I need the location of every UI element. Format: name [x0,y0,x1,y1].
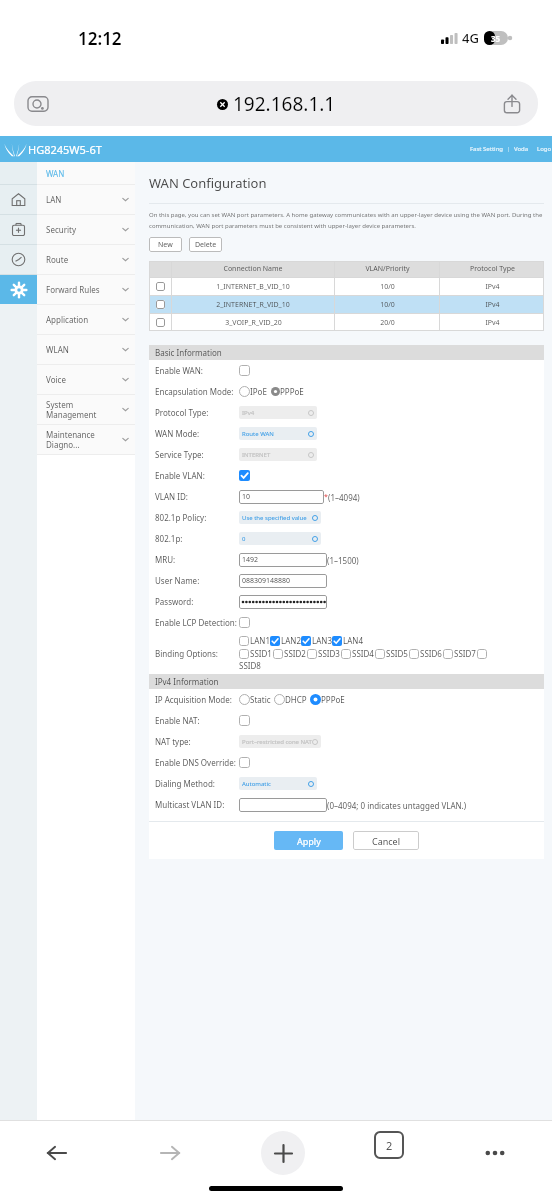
staticText: 10 [242,492,251,502]
staticText: Enable DNS Override: [155,757,239,768]
button[interactable]: LAN1 [239,635,270,646]
button[interactable]: IPv4 [239,406,317,419]
button[interactable]: Voice [37,365,135,394]
button[interactable] [307,649,317,659]
button[interactable] [239,798,327,812]
staticText: Forward Rules [46,284,121,295]
button[interactable] [239,617,250,628]
button[interactable]: Route WAN [239,427,317,440]
staticText: System Management [46,399,121,420]
button[interactable] [301,636,311,646]
staticText: SSID7 [454,648,476,659]
staticText: VLAN/Priority [365,264,410,274]
staticText: Binding Options: [155,648,239,659]
staticText: IPv4 [485,318,500,328]
button[interactable]: Forward Rules [37,275,135,304]
button[interactable] [239,386,250,397]
staticText: SSID2 [284,648,306,659]
button[interactable] [239,636,249,646]
staticText: 802.1p: [155,533,239,544]
button[interactable]: SSID3 [307,648,340,659]
button[interactable] [239,365,250,376]
button[interactable]: Share [502,94,522,114]
staticText: HG8245W5-6T [28,142,102,157]
button[interactable]: System Management [37,395,135,424]
button[interactable]: New [149,237,182,252]
staticText: WAN Mode: [155,428,239,439]
staticText: IPoE [250,386,267,397]
button[interactable]: More [473,1131,517,1175]
button[interactable]: 10 [239,490,324,504]
button[interactable]: SSID4 [341,648,374,659]
button[interactable] [310,694,321,705]
button[interactable]: LAN2 [270,635,301,646]
button[interactable] [239,470,250,481]
button[interactable]: Maintenance Diagno... [37,425,135,454]
staticText: LAN1 [250,635,270,646]
button[interactable]: New tab [261,1131,305,1175]
button[interactable]: INTERNET [239,448,317,461]
button[interactable]: Logo [537,145,552,153]
button[interactable] [270,636,280,646]
button[interactable]: 088309148880 [239,574,327,588]
button[interactable]: 2_INTERNET_R_VID_10 [149,296,544,313]
button[interactable] [274,694,285,705]
staticText: Enable VLAN: [155,470,239,481]
button[interactable] [273,649,283,659]
button[interactable]: Cancel [353,831,419,850]
button[interactable]: Forward Rules [0,275,37,304]
button[interactable] [332,636,342,646]
button[interactable] [341,649,351,659]
button[interactable]: Forward [148,1131,192,1175]
button[interactable] [239,694,250,705]
button[interactable]: Voda [514,145,529,153]
button[interactable]: LAN [37,185,135,214]
button[interactable]: 1492 [239,553,327,567]
button[interactable]: Menu section [0,185,37,214]
staticText: 3_VOIP_R_VID_20 [225,318,282,328]
button[interactable] [409,649,419,659]
staticText: 20/0 [380,318,395,328]
button[interactable] [443,649,453,659]
button[interactable]: Delete [189,237,222,252]
button[interactable]: LAN3 [301,635,332,646]
button[interactable]: 0 [239,532,321,545]
button[interactable] [239,757,250,768]
button[interactable]: WLAN [37,335,135,364]
button[interactable]: Use the specified value [239,511,321,524]
button[interactable]: SSID1 [239,648,272,659]
button[interactable]: Security [37,215,135,244]
button[interactable]: 1_INTERNET_B_VID_10 [149,278,544,295]
button[interactable]: 3_VOIP_R_VID_20 [149,314,544,331]
staticText: 1492 [242,555,259,565]
button[interactable]: Port–restricted cone NAT [239,735,321,748]
button[interactable]: SSID6 [409,648,442,659]
button[interactable]: Scan [28,94,48,114]
staticText: Cancel [372,835,401,847]
button[interactable]: Application [37,305,135,334]
button[interactable]: Menu section [0,245,37,274]
button[interactable]: WAN [46,162,135,184]
button[interactable]: Automatic [239,777,317,790]
button[interactable]: Scan [14,81,538,126]
button[interactable]: SSID7 [443,648,476,659]
button[interactable] [477,649,487,659]
button[interactable] [239,715,250,726]
button[interactable] [239,595,327,609]
button[interactable]: SSID2 [273,648,306,659]
button[interactable]: LAN4 [332,635,363,646]
staticText: Password: [155,596,239,607]
button[interactable]: Apply [274,831,343,850]
button[interactable]: Tabs [374,1131,404,1159]
staticText: Protocol Type: [155,407,239,418]
button[interactable]: Menu section [0,215,37,244]
staticText: SSID6 [420,648,442,659]
button[interactable]: Fast Setting [470,145,504,153]
button[interactable]: Route [37,245,135,274]
button[interactable]: SSID5 [375,648,408,659]
staticText: Use the specified value [242,514,307,522]
button[interactable] [239,649,249,659]
button[interactable] [271,387,280,396]
button[interactable]: Back [35,1131,79,1175]
button[interactable] [375,649,385,659]
